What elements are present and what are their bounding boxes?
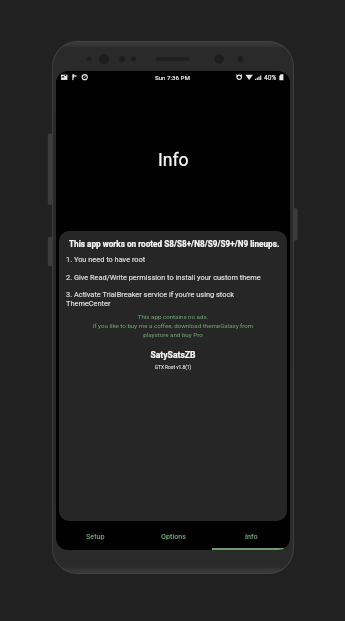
staticText: 1. You need to have root	[66, 255, 146, 264]
staticText: 2. Give Read/Write permission to install…	[66, 273, 261, 282]
staticText: Options	[161, 532, 186, 540]
staticText: This app contains no ads. If you like to…	[89, 313, 257, 338]
staticText: Info	[245, 532, 258, 540]
button[interactable]: Options	[134, 525, 212, 550]
staticText: This app works on rooted S8/S8+/N8/S9/S9…	[69, 239, 280, 249]
staticText: Sun 7:36 PM	[155, 74, 190, 81]
button[interactable]: Info	[212, 525, 290, 550]
staticText: Info	[158, 150, 189, 171]
staticText: 40%	[264, 74, 277, 82]
staticText: 3. Activate TrialBreaker service if you'…	[66, 290, 247, 308]
button[interactable]: Setup	[56, 525, 134, 550]
staticText: GTX Root v1.8(1)	[59, 365, 287, 371]
staticText: SatySatsZB	[59, 350, 287, 360]
staticText: Setup	[86, 532, 105, 540]
